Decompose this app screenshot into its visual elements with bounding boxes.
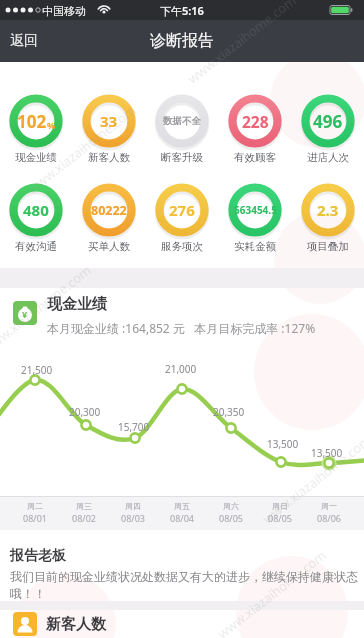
staticText: 15,700 [118,420,150,434]
staticText: 13,500 [311,446,343,460]
button[interactable]: 周四 [108,501,158,511]
staticText: 周日 [272,501,288,511]
staticText: 102 [17,110,47,133]
staticText: www.xiazaihome.com [184,0,300,87]
staticText: 08/05 [219,512,243,524]
staticText: 本月现金业绩 :164,852 元 本月目标完成率 :127% [47,320,316,336]
staticText: 新客人数 [46,615,106,634]
staticText: 我们目前的现金业绩状况处数据又有大的进步，继续保持健康状态哦！！ [10,569,362,601]
button[interactable] [225,180,285,240]
button[interactable] [152,180,212,240]
staticText: 新客人数 [88,151,130,164]
staticText: 服务项次 [161,240,203,253]
staticText: 08/05 [268,512,292,524]
staticText: 563454.5 [234,203,277,217]
button[interactable] [225,91,285,151]
staticText: 实耗金额 [234,240,276,253]
button[interactable]: ¥ [13,301,37,325]
staticText: 周五 [174,501,190,511]
staticText: 13,500 [267,437,299,451]
button[interactable] [6,91,66,151]
staticText: 买单人数 [88,240,130,253]
staticText: % [47,119,56,131]
button[interactable] [13,612,37,636]
button[interactable]: 周一 [304,501,354,511]
staticText: 20,350 [213,405,245,419]
staticText: www.xiazaihome.com [0,261,95,357]
staticText: ¥ [22,308,28,320]
staticText: 21,000 [165,362,197,376]
button[interactable] [79,180,139,240]
staticText: 诊断报告 [150,31,214,51]
staticText: 周一 [321,501,337,511]
button[interactable]: 返回 [10,32,38,50]
staticText: 2.3 [317,200,339,220]
staticText: 断客升级 [161,151,203,164]
button[interactable]: 周三 [59,501,109,511]
staticText: www.xiazaihome.com [24,101,140,197]
staticText: 有效顾客 [234,151,276,164]
button[interactable] [6,180,66,240]
button[interactable] [298,180,358,240]
staticText: 80222 [91,202,127,219]
staticText: 228 [242,111,269,132]
staticText: 20,300 [69,405,101,419]
staticText: 现金业绩 [47,295,107,314]
staticText: www.xiazaihome.com [214,546,330,638]
staticText: 周四 [125,501,141,511]
staticText: 现金业绩 [15,151,57,164]
staticText: 报告老板 [10,547,66,565]
staticText: 08/01 [23,512,47,524]
staticText: 返回 [10,32,38,50]
staticText: 周二 [27,501,43,511]
staticText: 21,500 [21,363,53,377]
staticText: 周三 [76,501,92,511]
staticText: 08/04 [170,512,194,524]
staticText: 有效沟通 [15,240,57,253]
button[interactable] [152,91,212,151]
button[interactable]: 周二 [10,501,60,511]
staticText: 下午5:16 [160,3,204,18]
button[interactable] [298,91,358,151]
button[interactable]: 周五 [157,501,207,511]
staticText: 276 [169,200,195,220]
staticText: 08/03 [121,512,145,524]
staticText: 08/06 [317,512,341,524]
staticText: 33 [100,111,118,131]
button[interactable]: 周日 [255,501,305,511]
staticText: 进店人次 [307,151,349,164]
staticText: 项目叠加 [307,240,349,253]
staticText: 周六 [223,501,239,511]
staticText: 496 [313,110,343,133]
staticText: 08/02 [72,512,96,524]
staticText: 480 [23,200,49,220]
staticText: www.xiazaihome.com [259,431,364,527]
button[interactable] [79,91,139,151]
staticText: 中国移动 [42,4,86,18]
button[interactable]: 周六 [206,501,256,511]
staticText: 数据不全 [163,115,201,127]
